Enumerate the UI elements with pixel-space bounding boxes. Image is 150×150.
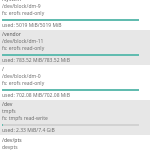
staticText: devpts — [2, 144, 18, 150]
staticText: used: 2.33 MiB/7.4 GiB — [2, 127, 55, 134]
button[interactable]: /vendor — [0, 30, 150, 65]
staticText: /dev/block/dm-0 — [2, 73, 41, 80]
staticText: /dev/block/dm-11 — [2, 38, 44, 45]
staticText: /vendor — [2, 31, 21, 38]
staticText: /dev — [2, 101, 13, 108]
button[interactable]: /system — [0, 0, 150, 30]
staticText: fs: erofs read-only — [2, 80, 45, 87]
staticText: used: 702.08 MiB/702.08 MiB — [2, 92, 70, 99]
staticText: used: 5019 MiB/5019 MiB — [2, 22, 62, 29]
staticText: /dev/pts — [2, 137, 22, 144]
staticText: /system — [2, 0, 21, 3]
staticText: used: 783.52 MiB/783.52 MiB — [2, 57, 70, 64]
button[interactable]: / — [0, 65, 150, 100]
staticText: tmpfs — [2, 108, 16, 115]
staticText: /dev/block/dm-9 — [2, 3, 41, 10]
staticText: / — [2, 66, 4, 73]
staticText: fs: erofs read-only — [2, 45, 45, 52]
button[interactable]: /dev — [0, 100, 150, 135]
staticText: fs: erofs read-only — [2, 10, 45, 17]
staticText: fs: tmpfs read-write — [2, 115, 48, 122]
button[interactable]: /dev/pts — [0, 136, 150, 150]
